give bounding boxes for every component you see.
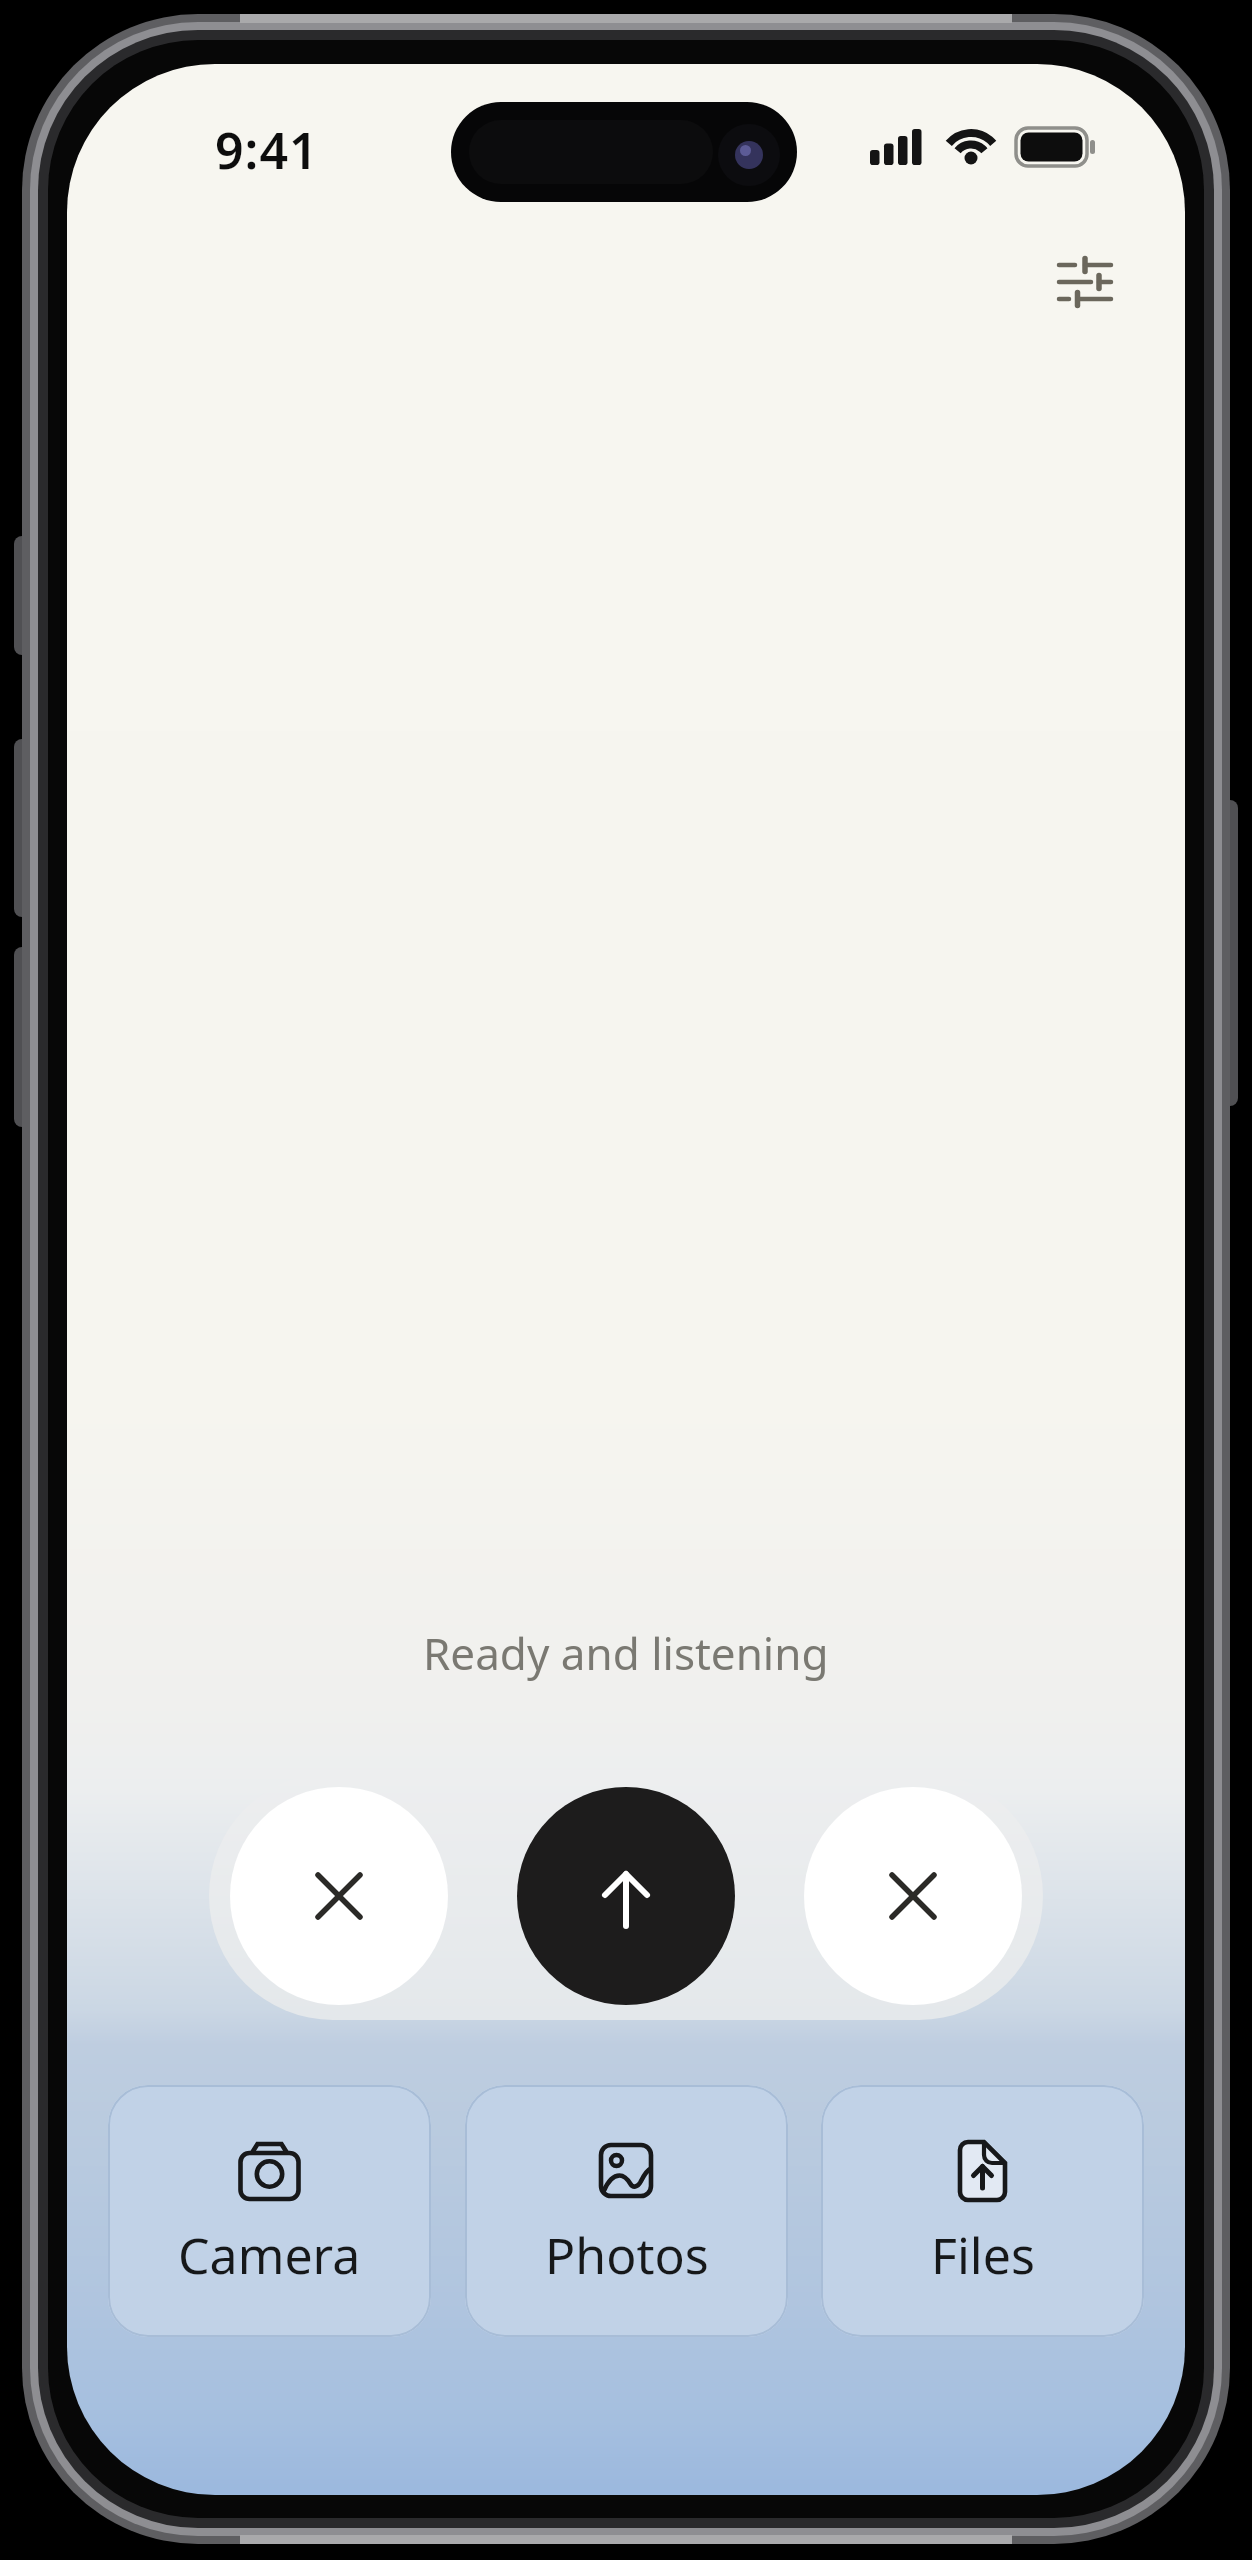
button[interactable]	[804, 1787, 1022, 2005]
button[interactable]: Photos	[465, 2085, 788, 2337]
staticText: 9:41	[215, 116, 319, 180]
button[interactable]: Files	[821, 2085, 1144, 2337]
button[interactable]	[230, 1787, 448, 2005]
staticText: Files	[931, 2221, 1035, 2285]
button[interactable]: Camera	[108, 2085, 431, 2337]
button[interactable]	[1042, 249, 1128, 335]
button[interactable]	[517, 1787, 735, 2005]
staticText: Photos	[545, 2221, 709, 2285]
staticText: Camera	[178, 2221, 361, 2285]
staticText: Ready and listening	[423, 1623, 829, 1683]
